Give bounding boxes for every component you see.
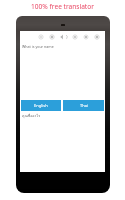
button[interactable]: Speak: [60, 34, 66, 40]
button[interactable]: Record: [38, 34, 44, 40]
button[interactable]: Camera: [49, 34, 55, 40]
button[interactable]: English: [21, 100, 61, 111]
button[interactable]: Share: [83, 34, 89, 40]
staticText: คุณชื่ออะไร: [22, 113, 41, 119]
button[interactable]: Thai: [63, 100, 104, 111]
staticText: English: [34, 103, 48, 108]
button[interactable]: More: [94, 34, 100, 40]
staticText: 100% free translator: [0, 2, 125, 11]
staticText: Thai: [80, 103, 88, 108]
button[interactable]: Copy: [72, 34, 78, 40]
staticText: What is your name: [22, 44, 54, 49]
